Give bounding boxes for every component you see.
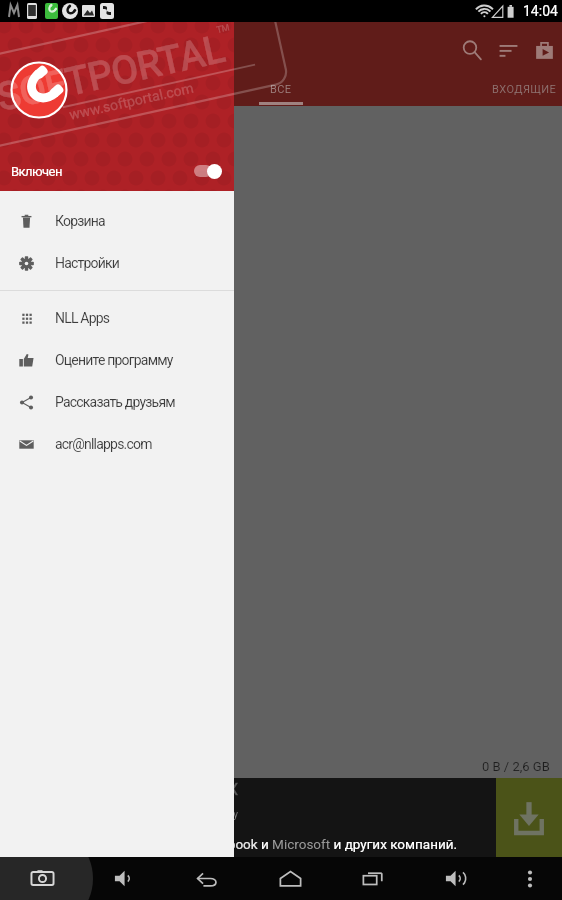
button[interactable]: Home <box>249 857 332 900</box>
staticText: ay <box>228 809 239 821</box>
button[interactable]: Recents <box>332 857 415 900</box>
button[interactable] <box>194 161 222 181</box>
button[interactable]: acr@nllapps.com <box>0 423 234 465</box>
button[interactable]: Sort <box>490 32 526 68</box>
staticText: TM <box>215 22 231 36</box>
button[interactable]: ВСЕ <box>238 78 324 106</box>
staticText: ВХОДЯЩИЕ <box>492 83 557 96</box>
staticText: SOFTPORTAL <box>0 26 229 120</box>
button[interactable]: Play Store <box>526 32 562 68</box>
staticText: 0 B / 2,6 GB <box>482 759 550 774</box>
button[interactable]: Camera <box>20 857 64 900</box>
button[interactable]: Back <box>166 857 249 900</box>
staticText: 14:04 <box>523 3 558 19</box>
staticText: NLL Apps <box>55 310 110 326</box>
staticText: acr@nllapps.com <box>55 436 152 452</box>
button[interactable]: Настройки <box>0 242 234 284</box>
button[interactable]: Volume up <box>415 857 498 900</box>
staticText: ВСЕ <box>270 83 292 96</box>
staticText: Настройки <box>55 255 120 271</box>
button[interactable]: ВХОДЯЩИЕ <box>487 79 562 100</box>
staticText: Корзина <box>55 213 105 229</box>
staticText: Включен <box>11 164 62 179</box>
staticText: Facebook и Microsoft и других компаний. <box>199 836 539 852</box>
button[interactable]: More options <box>498 857 562 900</box>
button[interactable]: Volume down <box>84 857 166 900</box>
button[interactable]: Корзина <box>0 200 234 242</box>
staticText: www.softportal.com <box>68 80 195 123</box>
staticText: Рассказать друзьям <box>55 394 175 410</box>
button[interactable]: NLL Apps <box>0 297 234 339</box>
staticText: Оцените программу <box>55 352 173 368</box>
staticText: X <box>228 780 239 799</box>
button[interactable]: Install <box>496 778 562 857</box>
button[interactable]: Search <box>454 32 490 68</box>
button[interactable]: Оцените программу <box>0 339 234 381</box>
button[interactable]: Рассказать друзьям <box>0 381 234 423</box>
